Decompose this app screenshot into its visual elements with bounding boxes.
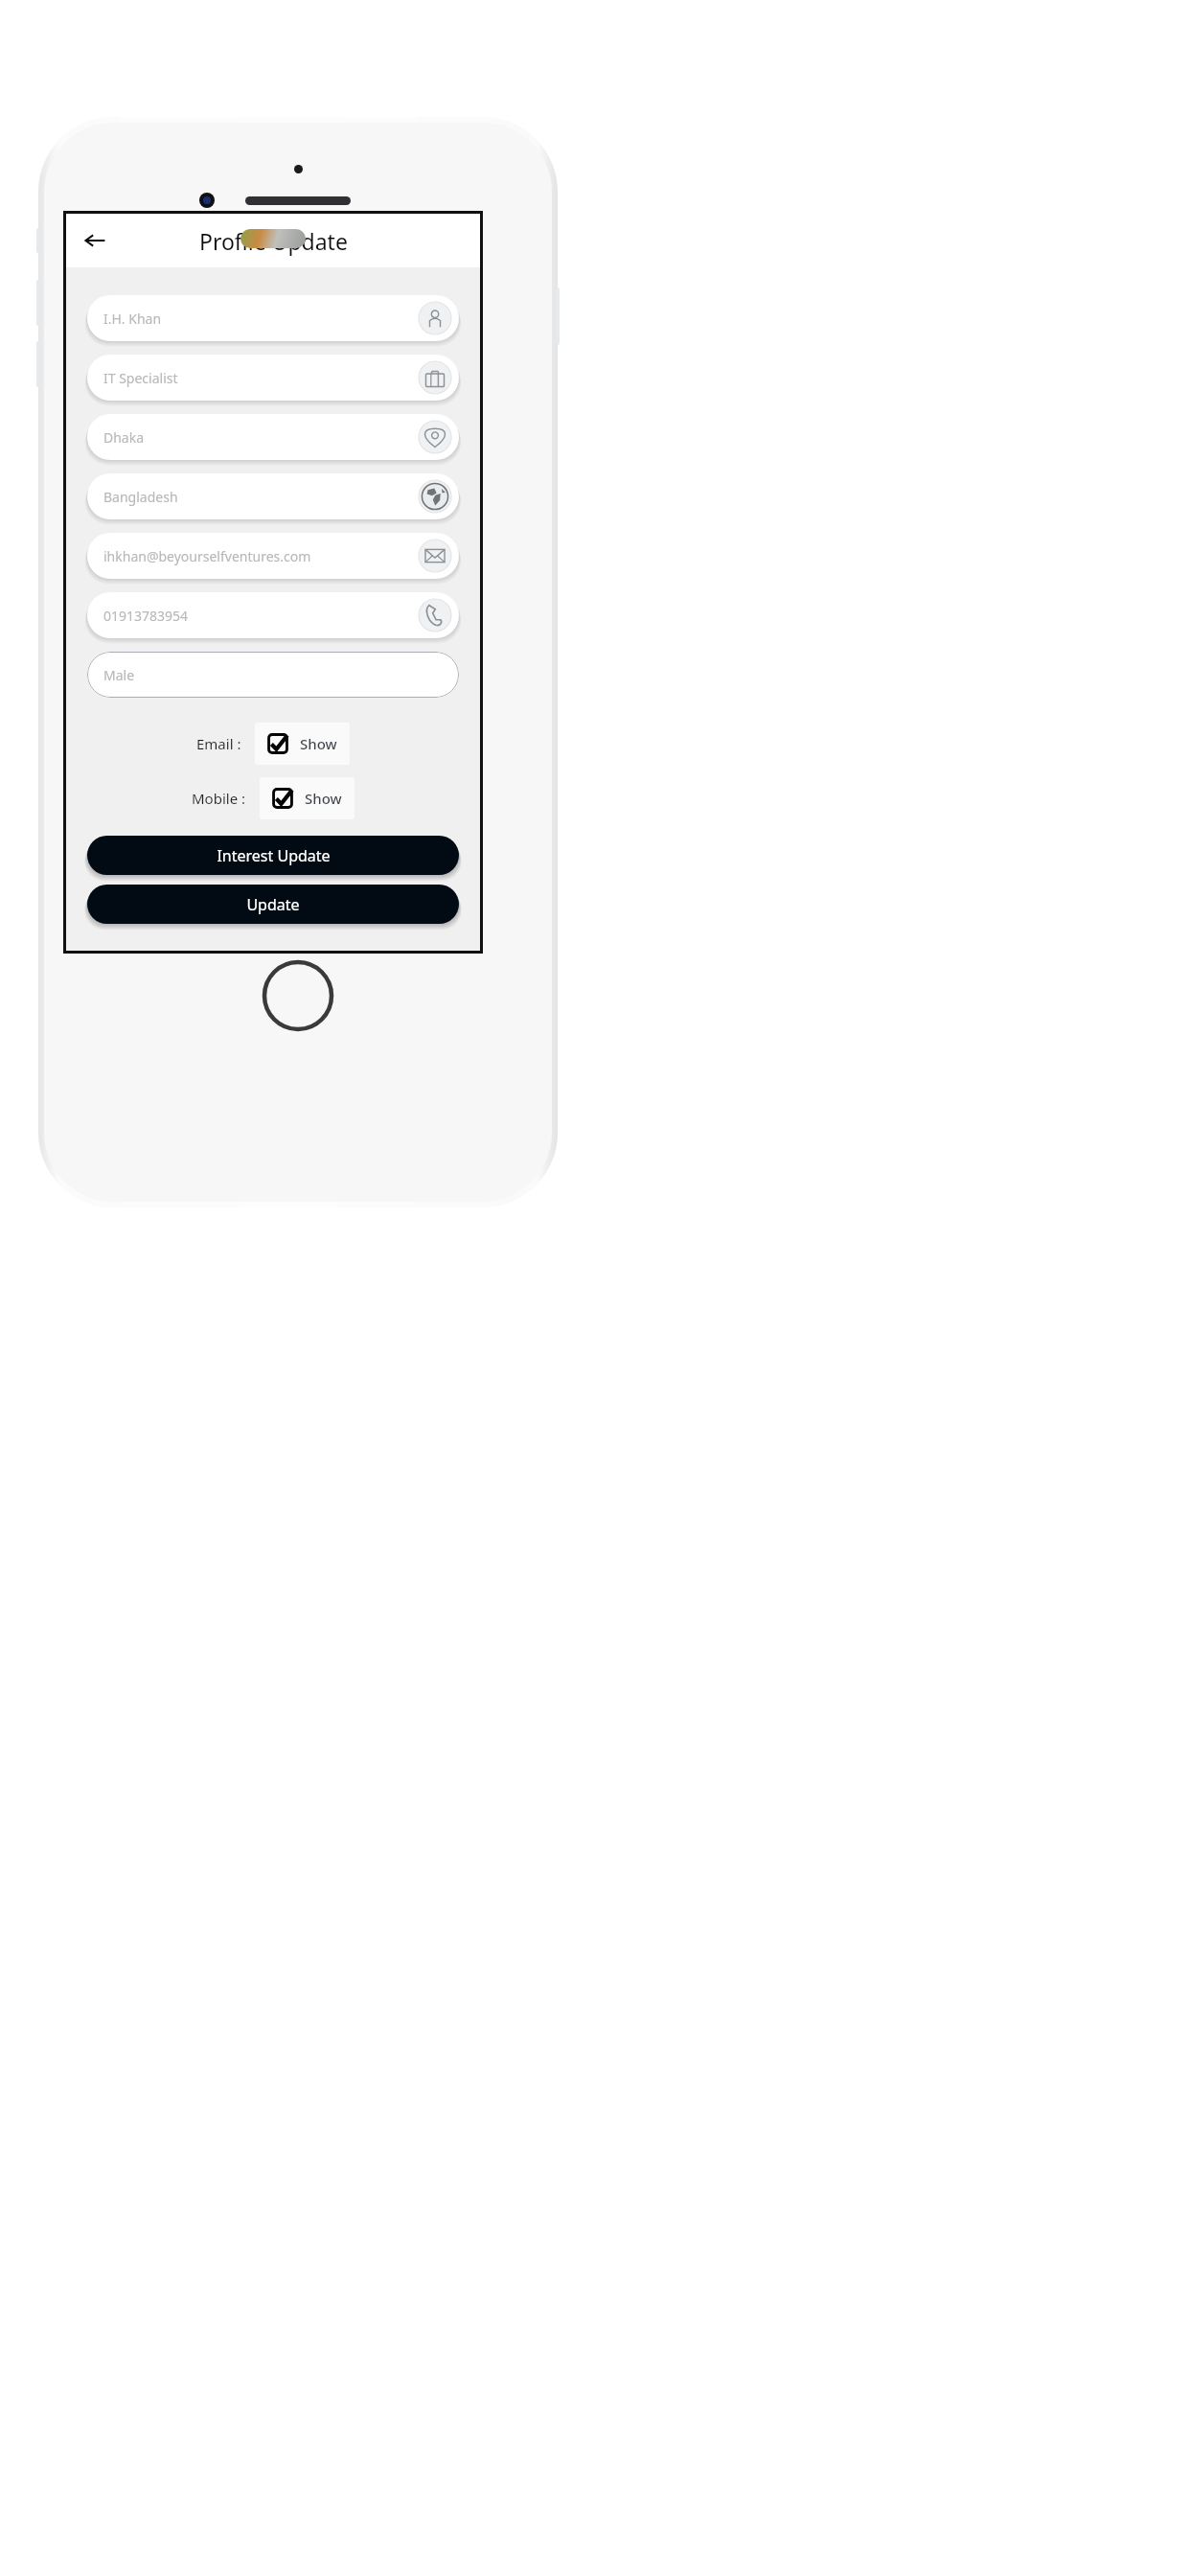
staticText: 01913783954 [103,607,189,625]
staticText: Email : [196,734,241,753]
staticText: Dhaka [103,428,145,447]
staticText: Interest Update [217,845,331,866]
staticText: Update [246,894,300,915]
button[interactable]: Show [260,777,355,819]
staticText: Show [305,789,342,808]
button[interactable]: I.H. Khan [87,295,459,341]
staticText: I.H. Khan [103,310,162,328]
button[interactable]: 01913783954 [87,592,459,638]
button[interactable]: Interest Update [87,836,459,875]
staticText: Show [300,734,337,753]
button[interactable]: IT Specialist [87,355,459,401]
button[interactable]: Show [255,723,350,765]
button[interactable]: ihkhan@beyourselfventures.com [87,533,459,579]
staticText: ihkhan@beyourselfventures.com [103,547,311,565]
button[interactable]: Back [74,219,116,262]
staticText: Mobile : [192,789,246,808]
staticText: Male [103,666,135,684]
staticText: Profile Update [199,226,348,256]
staticText: IT Specialist [103,369,178,387]
button[interactable]: Dhaka [87,414,459,460]
button[interactable]: Bangladesh [87,473,459,519]
staticText: Bangladesh [103,488,178,506]
button[interactable]: Male [87,652,459,698]
button[interactable]: Update [87,885,459,924]
